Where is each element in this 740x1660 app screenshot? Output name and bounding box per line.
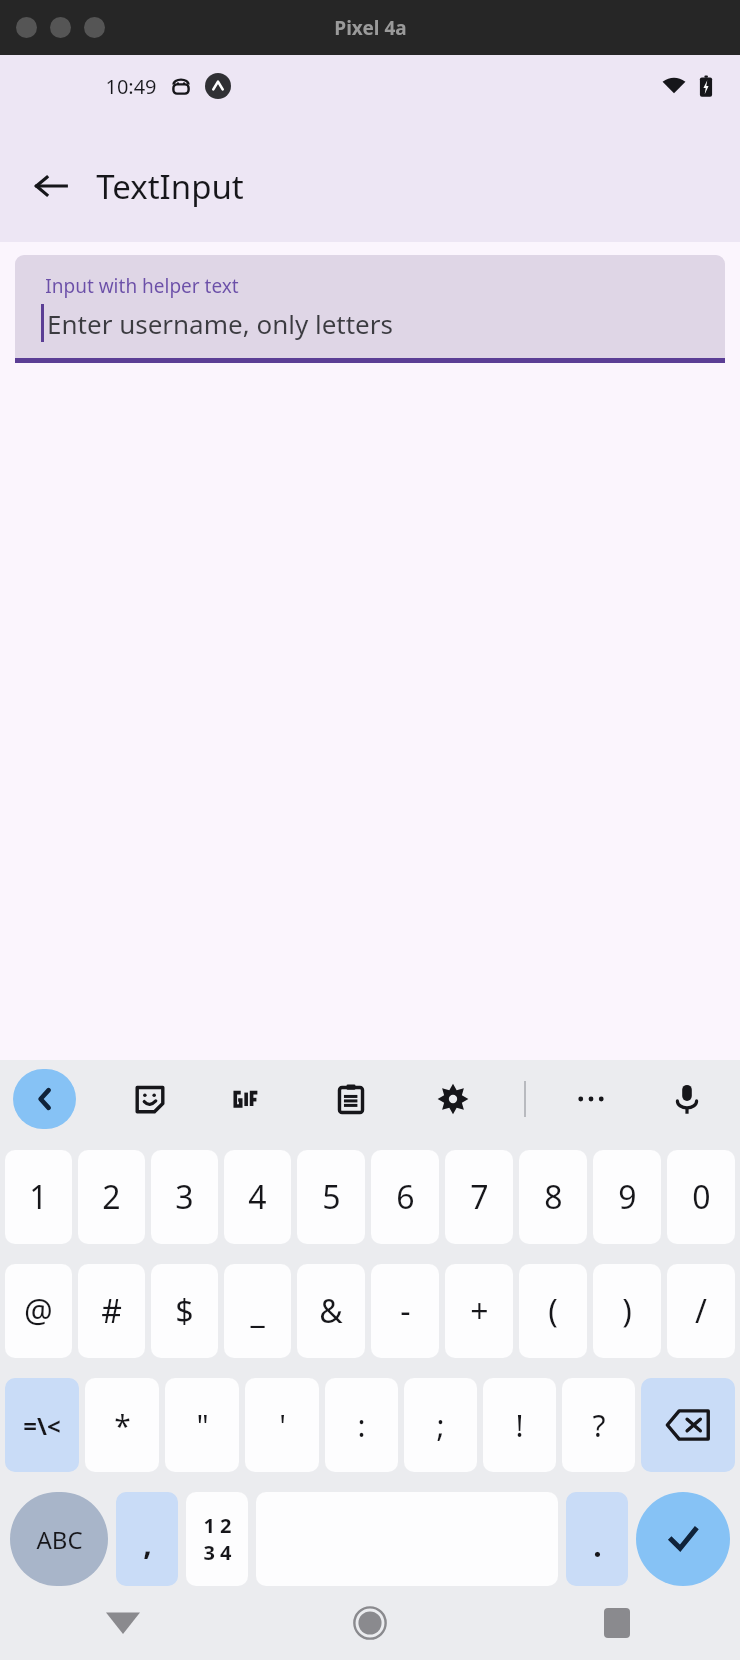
staticText: 1 2 <box>203 1512 232 1539</box>
button[interactable]: Enter <box>636 1492 730 1586</box>
staticText: ; <box>436 1405 445 1446</box>
button[interactable]: 1 <box>5 1150 72 1244</box>
staticText: Pixel 4a <box>334 15 407 41</box>
staticText: 10:49 <box>105 73 157 100</box>
button[interactable]: # <box>78 1264 145 1358</box>
button[interactable]: More options <box>562 1070 620 1128</box>
staticText: 6 <box>396 1175 415 1219</box>
button[interactable]: $ <box>151 1264 218 1358</box>
staticText: 3 <box>175 1175 194 1219</box>
staticText: ABC <box>36 1523 83 1556</box>
button[interactable]: ? <box>562 1378 635 1472</box>
button[interactable]: 6 <box>371 1150 439 1244</box>
button[interactable]: 8 <box>519 1150 587 1244</box>
button[interactable]: ) <box>593 1264 661 1358</box>
staticText: @ <box>24 1289 53 1333</box>
staticText: $ <box>175 1289 194 1333</box>
staticText: ? <box>592 1405 606 1446</box>
staticText: 7 <box>470 1175 489 1219</box>
button[interactable]: 4 <box>224 1150 291 1244</box>
button[interactable]: Stickers <box>121 1070 179 1128</box>
button[interactable]: Clipboard <box>322 1070 380 1128</box>
button[interactable]: 9 <box>593 1150 661 1244</box>
staticText: : <box>357 1405 366 1446</box>
button[interactable]: Back <box>88 1588 158 1658</box>
staticText: 2 <box>102 1175 121 1219</box>
button[interactable]: GIF <box>221 1070 279 1128</box>
button[interactable]: Backspace <box>641 1378 735 1472</box>
button[interactable]: Recents <box>582 1588 652 1658</box>
staticText: Input with helper text <box>45 273 239 299</box>
button[interactable]: / <box>667 1264 735 1358</box>
button[interactable]: : <box>325 1378 398 1472</box>
button[interactable]: & <box>297 1264 365 1358</box>
staticText: " <box>196 1405 209 1446</box>
staticText: . <box>593 1525 602 1566</box>
button[interactable]: 0 <box>667 1150 735 1244</box>
button[interactable]: 7 <box>445 1150 513 1244</box>
staticText: + <box>470 1289 489 1333</box>
button[interactable]: 2 <box>78 1150 145 1244</box>
staticText: 9 <box>618 1175 637 1219</box>
button[interactable]: Close toolbar <box>13 1069 76 1129</box>
button[interactable]: Settings <box>424 1070 482 1128</box>
button[interactable]: Home <box>335 1588 405 1658</box>
button[interactable]: ! <box>483 1378 556 1472</box>
button[interactable]: ( <box>519 1264 587 1358</box>
staticText: ' <box>279 1405 286 1446</box>
button[interactable]: Back <box>24 159 78 213</box>
button[interactable]: 5 <box>297 1150 365 1244</box>
staticText: =\< <box>23 1409 61 1442</box>
button[interactable]: Voice input <box>658 1070 716 1128</box>
staticText: / <box>695 1289 707 1333</box>
staticText: 1 <box>29 1175 48 1219</box>
button[interactable]: * <box>85 1378 159 1472</box>
staticText: , <box>143 1523 152 1564</box>
staticText: ! <box>515 1405 524 1446</box>
staticText: Enter username, only letters <box>47 306 393 341</box>
staticText: 3 4 <box>203 1539 232 1566</box>
button[interactable]: ABC <box>10 1492 108 1586</box>
staticText: * <box>114 1405 131 1446</box>
staticText: ( <box>548 1289 558 1333</box>
staticText: TextInput <box>96 164 244 209</box>
button[interactable]: ' <box>245 1378 319 1472</box>
button[interactable]: , <box>116 1492 178 1586</box>
staticText: 8 <box>544 1175 563 1219</box>
staticText: _ <box>250 1289 265 1333</box>
staticText: ) <box>622 1289 632 1333</box>
button[interactable]: Input with helper text <box>15 255 725 363</box>
button[interactable]: . <box>566 1492 628 1586</box>
button[interactable]: 3 <box>151 1150 218 1244</box>
button[interactable]: 1 2 <box>186 1492 248 1586</box>
staticText: 0 <box>692 1175 711 1219</box>
button[interactable]: " <box>165 1378 239 1472</box>
staticText: & <box>319 1289 343 1333</box>
staticText: 5 <box>322 1175 341 1219</box>
button[interactable]: =\< <box>5 1378 79 1472</box>
button[interactable]: ; <box>404 1378 477 1472</box>
staticText: - <box>400 1289 411 1333</box>
staticText: 4 <box>248 1175 267 1219</box>
button[interactable]: _ <box>224 1264 291 1358</box>
button[interactable]: - <box>371 1264 439 1358</box>
staticText: # <box>101 1289 122 1333</box>
button[interactable]: + <box>445 1264 513 1358</box>
button[interactable]: @ <box>5 1264 72 1358</box>
